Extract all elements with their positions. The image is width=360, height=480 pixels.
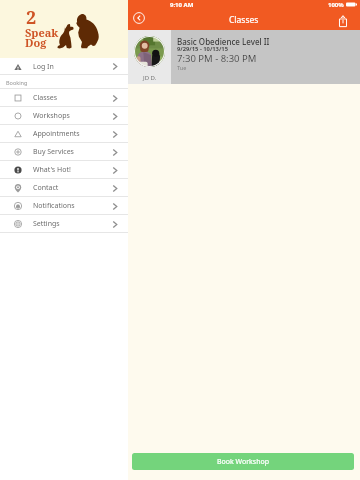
button[interactable]: Share <box>335 13 351 29</box>
button[interactable]: Buy Services <box>0 143 128 161</box>
staticText: 9:10 AM <box>170 1 194 9</box>
staticText: Contact <box>33 183 59 193</box>
staticText: Classes <box>229 14 259 26</box>
button[interactable]: Classes <box>0 89 128 107</box>
button[interactable]: What's Hot! <box>0 161 128 179</box>
staticText: 2 <box>26 5 37 30</box>
staticText: 7:30 PM - 8:30 PM <box>177 52 257 65</box>
button[interactable]: Log In <box>0 58 128 75</box>
button[interactable]: JD D. <box>128 30 360 84</box>
staticText: Speak <box>25 25 59 40</box>
staticText: 100% <box>328 1 344 9</box>
staticText: Settings <box>33 219 60 229</box>
button[interactable]: Notifications <box>0 197 128 215</box>
staticText: Log In <box>33 62 54 72</box>
staticText: Workshops <box>33 111 70 121</box>
staticText: Dog <box>25 35 47 50</box>
button[interactable]: Book Workshop <box>132 453 354 470</box>
button[interactable]: Settings <box>0 215 128 233</box>
staticText: Buy Services <box>33 147 74 157</box>
button[interactable]: Appointments <box>0 125 128 143</box>
staticText: JD D. <box>143 74 157 82</box>
button[interactable]: Workshops <box>0 107 128 125</box>
staticText: 9/29/15 - 10/13/15 <box>177 45 228 53</box>
staticText: Booking <box>6 79 28 86</box>
button[interactable]: Back <box>131 10 147 26</box>
staticText: Basic Obedience Level II <box>177 36 270 47</box>
staticText: Classes <box>33 93 58 103</box>
staticText: What's Hot! <box>33 165 71 175</box>
staticText: Notifications <box>33 201 75 211</box>
staticText: Appointments <box>33 129 80 139</box>
staticText: Book Workshop <box>217 457 270 467</box>
button[interactable]: Contact <box>0 179 128 197</box>
staticText: Tue <box>177 64 187 71</box>
